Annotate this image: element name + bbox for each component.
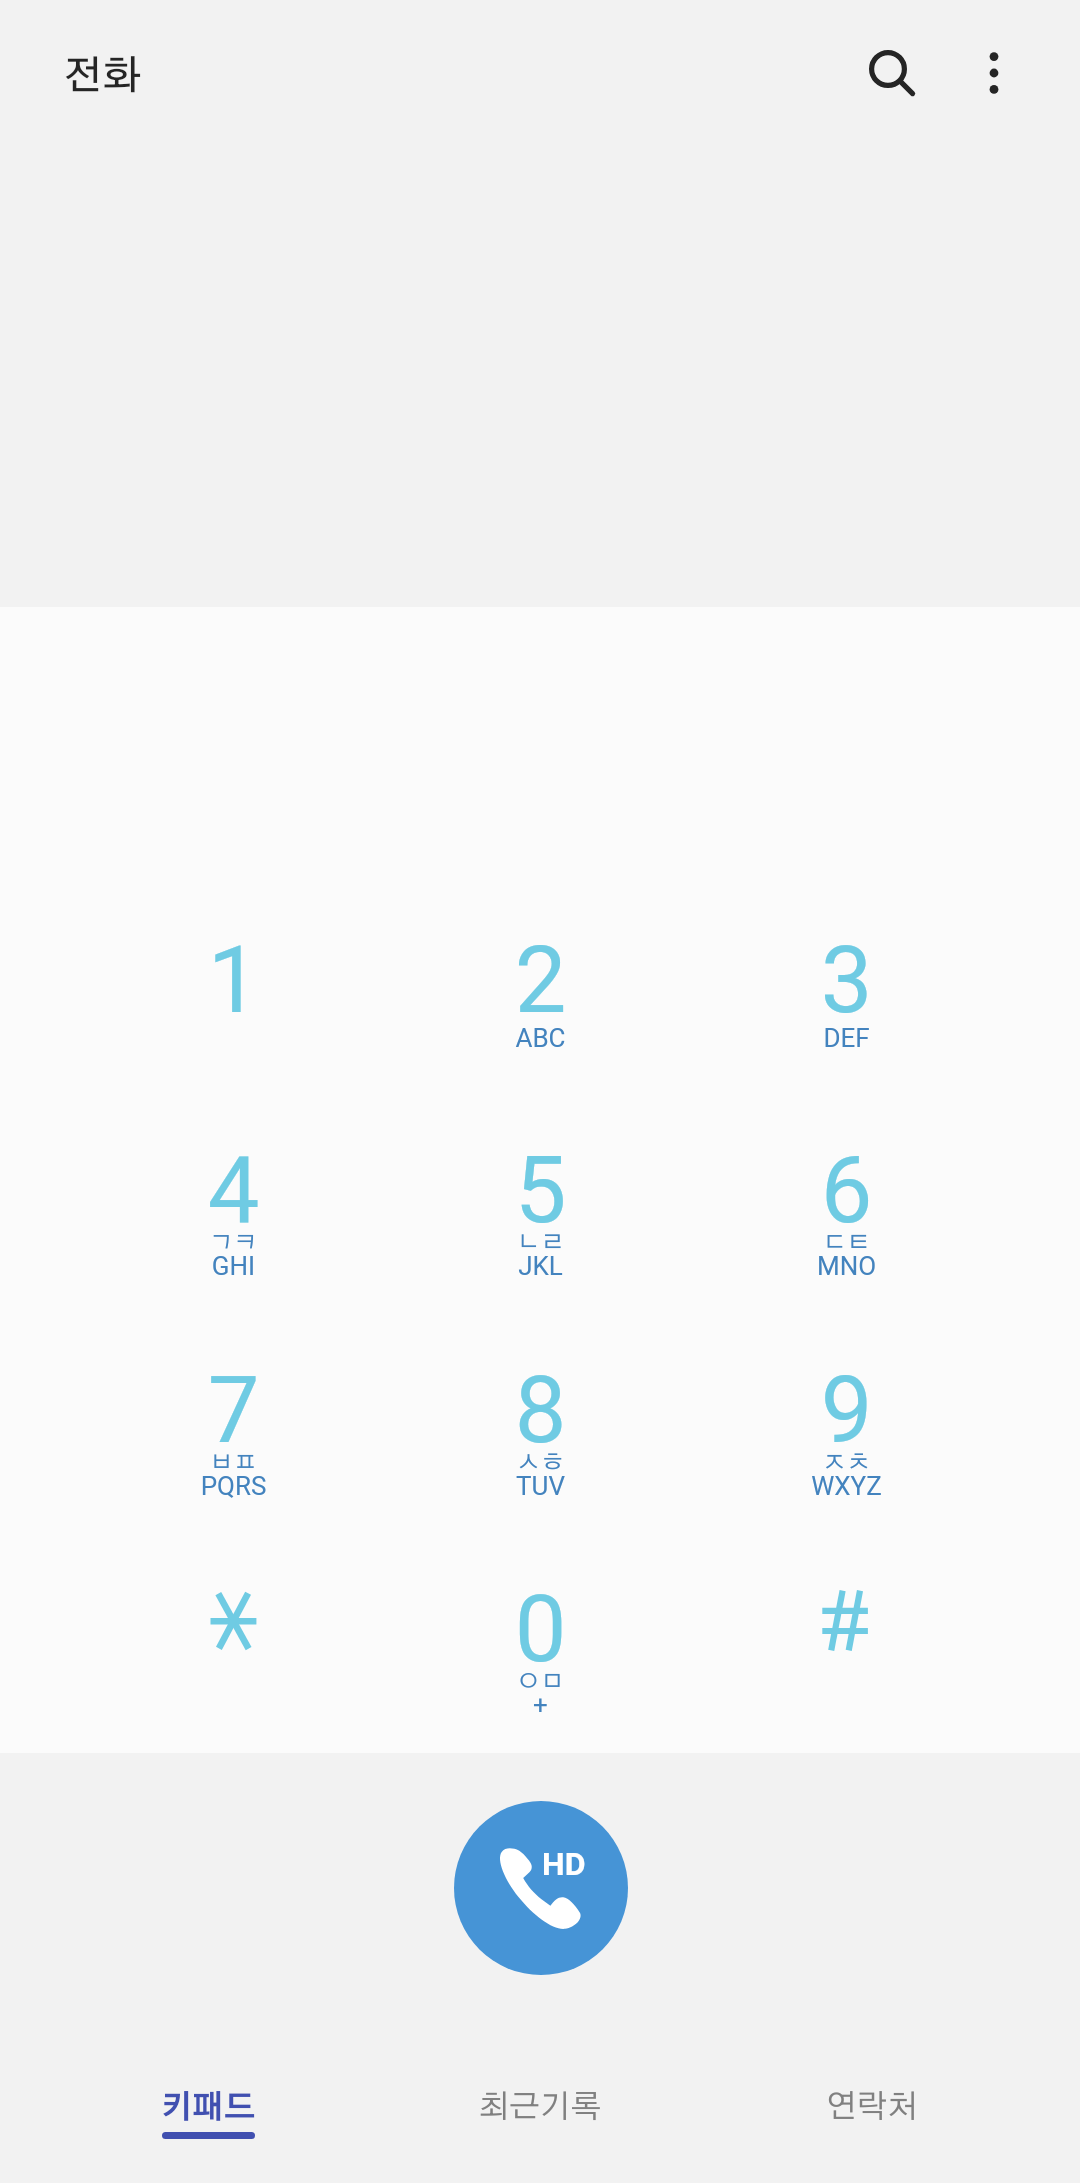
button[interactable]: 연락처 [706, 2050, 1038, 2170]
staticText: MNO [693, 1251, 1000, 1281]
button[interactable]: star [80, 1534, 387, 1739]
staticText: 8 [387, 1357, 694, 1465]
button[interactable]: 7 [80, 1315, 387, 1520]
staticText: TUV [387, 1471, 694, 1501]
staticText: WXYZ [693, 1471, 1000, 1501]
staticText: ㅈㅊ [693, 1451, 1000, 1475]
button[interactable]: 0 [387, 1534, 694, 1739]
button[interactable]: 키패드 [42, 2050, 374, 2170]
button[interactable]: 3 [693, 885, 1000, 1090]
button[interactable]: Call [454, 1801, 628, 1975]
staticText: ㅂㅍ [80, 1451, 387, 1475]
staticText: ㄱㅋ [80, 1231, 387, 1255]
button[interactable]: 8 [387, 1315, 694, 1520]
button[interactable]: More options [940, 19, 1048, 127]
staticText: ㄷㅌ [693, 1231, 1000, 1255]
button[interactable]: 4 [80, 1095, 387, 1300]
staticText: 최근기록 [374, 2091, 706, 2123]
staticText: 6 [693, 1137, 1000, 1245]
staticText: 9 [693, 1357, 1000, 1465]
staticText: 0 [387, 1576, 694, 1684]
button[interactable]: 2 [387, 885, 694, 1090]
staticText: HD [542, 1845, 586, 1883]
staticText: + [387, 1690, 694, 1720]
staticText: ABC [387, 1023, 694, 1053]
staticText: 연락처 [706, 2091, 1038, 2123]
staticText: JKL [387, 1251, 694, 1281]
staticText: 키패드 [42, 2092, 374, 2124]
button[interactable]: 9 [693, 1315, 1000, 1520]
staticText: PQRS [80, 1471, 387, 1501]
button[interactable]: 5 [387, 1095, 694, 1300]
staticText: ㅇㅁ [387, 1670, 694, 1694]
staticText: ㅅㅎ [387, 1451, 694, 1475]
button[interactable]: Search [839, 20, 947, 128]
staticText: 전화 [63, 57, 141, 97]
staticText: 2 [387, 927, 694, 1035]
staticText: 4 [80, 1137, 387, 1245]
staticText: DEF [693, 1023, 1000, 1053]
staticText: 7 [80, 1357, 387, 1465]
staticText: ㄴㄹ [387, 1231, 694, 1255]
button[interactable]: pound [693, 1534, 1000, 1739]
button[interactable]: 최근기록 [374, 2050, 706, 2170]
button[interactable]: 1 [80, 885, 387, 1090]
staticText: 1 [80, 927, 387, 1035]
staticText: 3 [693, 927, 1000, 1035]
staticText: GHI [80, 1251, 387, 1281]
staticText: 5 [387, 1137, 694, 1245]
button[interactable]: 6 [693, 1095, 1000, 1300]
